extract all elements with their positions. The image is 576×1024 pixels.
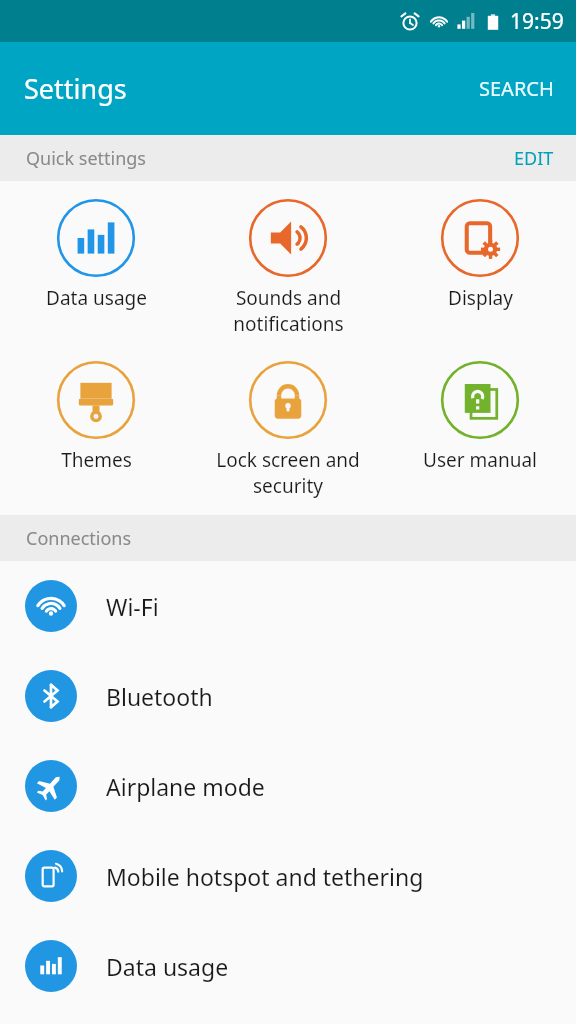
staticText: Display	[448, 285, 513, 311]
staticText: Airplane mode	[106, 771, 265, 802]
staticText: Sounds and notifications	[233, 285, 344, 337]
staticText: Themes	[61, 447, 132, 473]
staticText: Connections	[26, 526, 132, 551]
button[interactable]: Wi-Fi	[0, 561, 576, 651]
staticText: Lock screen and security	[216, 447, 360, 499]
button[interactable]: Themes	[0, 355, 192, 473]
staticText: User manual	[423, 447, 537, 473]
button[interactable]: Bluetooth	[0, 651, 576, 741]
button[interactable]: Sounds and notifications	[192, 193, 384, 337]
staticText: 19:59	[510, 7, 564, 36]
staticText: Bluetooth	[106, 681, 213, 712]
button[interactable]: Display	[384, 193, 576, 311]
staticText: Wi-Fi	[106, 591, 159, 622]
button[interactable]: Lock screen and security	[192, 355, 384, 499]
staticText: Data usage	[46, 285, 147, 311]
button[interactable]: EDIT	[492, 136, 576, 181]
button[interactable]: Data usage	[0, 193, 192, 311]
button[interactable]: SEARCH	[457, 57, 576, 120]
button[interactable]: Data usage	[0, 921, 576, 1011]
button[interactable]: User manual	[384, 355, 576, 473]
staticText: Mobile hotspot and tethering	[106, 861, 424, 892]
staticText: Data usage	[106, 951, 229, 982]
staticText: Settings	[24, 70, 127, 107]
button[interactable]: Airplane mode	[0, 741, 576, 831]
staticText: Quick settings	[26, 146, 146, 171]
staticText: EDIT	[514, 146, 554, 171]
button[interactable]: Mobile hotspot and tethering	[0, 831, 576, 921]
staticText: SEARCH	[479, 75, 554, 102]
